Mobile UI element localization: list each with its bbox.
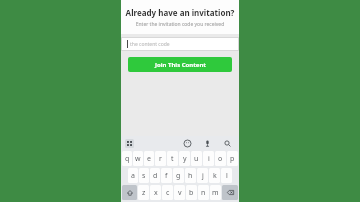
staticText: t [171, 154, 174, 164]
button[interactable]: Stickers [183, 139, 192, 148]
button[interactable]: q [122, 151, 132, 166]
button[interactable]: Voice input [203, 139, 212, 148]
button[interactable]: b [186, 185, 197, 200]
button[interactable]: r [155, 151, 166, 166]
button[interactable]: v [174, 185, 185, 200]
button[interactable]: o [215, 151, 226, 166]
button[interactable]: a [128, 168, 138, 183]
staticText: x [154, 188, 158, 198]
staticText: r [159, 154, 162, 164]
button[interactable]: l [221, 168, 232, 183]
button[interactable]: f [161, 168, 172, 183]
staticText: Enter the invitation code you received [121, 21, 239, 28]
button[interactable]: c [162, 185, 173, 200]
staticText: b [189, 188, 194, 198]
button[interactable]: p [227, 151, 238, 166]
button[interactable]: z [138, 185, 149, 200]
button[interactable]: m [210, 185, 221, 200]
button[interactable]: e [144, 151, 154, 166]
staticText: n [201, 188, 206, 198]
button[interactable]: d [150, 168, 160, 183]
staticText: the content code [130, 41, 170, 48]
staticText: Already have an invitation? [121, 7, 239, 18]
button[interactable]: x [150, 185, 161, 200]
staticText: j [202, 171, 204, 181]
staticText: d [153, 171, 158, 181]
button[interactable]: Shift [122, 185, 137, 200]
staticText: o [218, 154, 223, 164]
staticText: y [183, 154, 187, 164]
staticText: z [142, 188, 146, 198]
button[interactable]: j [197, 168, 208, 183]
button[interactable]: y [179, 151, 190, 166]
staticText: q [125, 154, 130, 164]
button[interactable]: Search [223, 139, 232, 148]
staticText: v [178, 188, 182, 198]
button[interactable]: the content code [121, 37, 239, 51]
staticText: w [135, 154, 141, 164]
staticText: c [166, 188, 170, 198]
staticText: f [165, 171, 168, 181]
button[interactable]: n [198, 185, 209, 200]
staticText: l [226, 171, 228, 181]
staticText: Join This Content [155, 61, 206, 69]
staticText: k [213, 171, 217, 181]
staticText: e [147, 154, 151, 164]
button[interactable]: g [173, 168, 184, 183]
button[interactable]: u [191, 151, 202, 166]
staticText: m [212, 188, 219, 198]
staticText: a [131, 171, 135, 181]
staticText: i [208, 154, 210, 164]
staticText: p [230, 154, 235, 164]
button[interactable]: h [185, 168, 196, 183]
button[interactable]: k [209, 168, 220, 183]
button[interactable]: Join This Content [128, 57, 232, 72]
button[interactable]: Toolbar [125, 139, 134, 148]
button[interactable]: w [133, 151, 143, 166]
staticText: u [194, 154, 199, 164]
staticText: h [188, 171, 193, 181]
staticText: g [176, 171, 181, 181]
button[interactable]: t [167, 151, 178, 166]
staticText: s [142, 171, 146, 181]
button[interactable]: s [139, 168, 149, 183]
button[interactable]: i [203, 151, 214, 166]
button[interactable]: Backspace [222, 185, 238, 200]
